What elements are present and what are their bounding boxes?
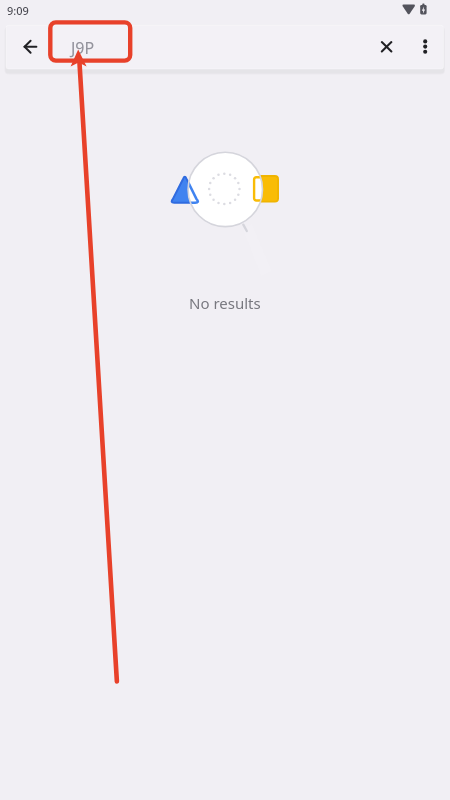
button[interactable]: Clear search [365,25,408,69]
staticText: No results [189,293,261,313]
button[interactable]: J9P [53,25,365,69]
staticText: 9:09 [7,3,29,18]
button[interactable]: Navigate up [7,25,53,69]
staticText: J9P [71,37,95,59]
button[interactable]: More options [408,25,444,69]
